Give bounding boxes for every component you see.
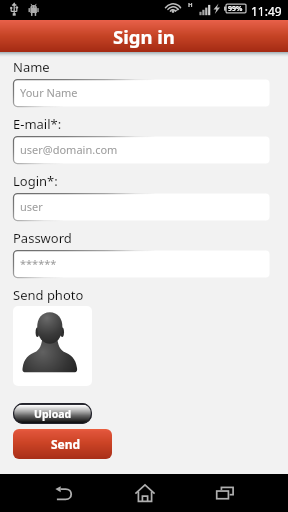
button[interactable]: Photo (13, 306, 92, 386)
staticText: Password (13, 229, 72, 247)
staticText: user (20, 199, 43, 214)
button[interactable]: Your Name (13, 79, 270, 107)
button[interactable]: Back (44, 474, 85, 512)
staticText: 11:49 (251, 3, 282, 19)
staticText: E-mail*: (13, 115, 62, 133)
staticText: user@domain.com (20, 142, 118, 157)
staticText: 99% (228, 4, 243, 14)
button[interactable]: ****** (13, 250, 270, 278)
button[interactable]: Recent apps (204, 474, 245, 512)
staticText: Name (13, 58, 50, 76)
button[interactable]: Upload (13, 403, 92, 424)
staticText: Upload (34, 407, 72, 421)
staticText: Send (51, 436, 81, 452)
button[interactable]: user (13, 193, 270, 221)
staticText: ****** (20, 256, 57, 271)
staticText: Your Name (20, 85, 78, 100)
button[interactable]: user@domain.com (13, 136, 270, 164)
staticText: Send photo (13, 286, 84, 304)
button[interactable]: Home (124, 474, 165, 512)
staticText: H (188, 1, 193, 9)
button[interactable]: Send (13, 429, 112, 459)
staticText: Sign in (113, 24, 175, 49)
staticText: Login*: (13, 172, 58, 190)
